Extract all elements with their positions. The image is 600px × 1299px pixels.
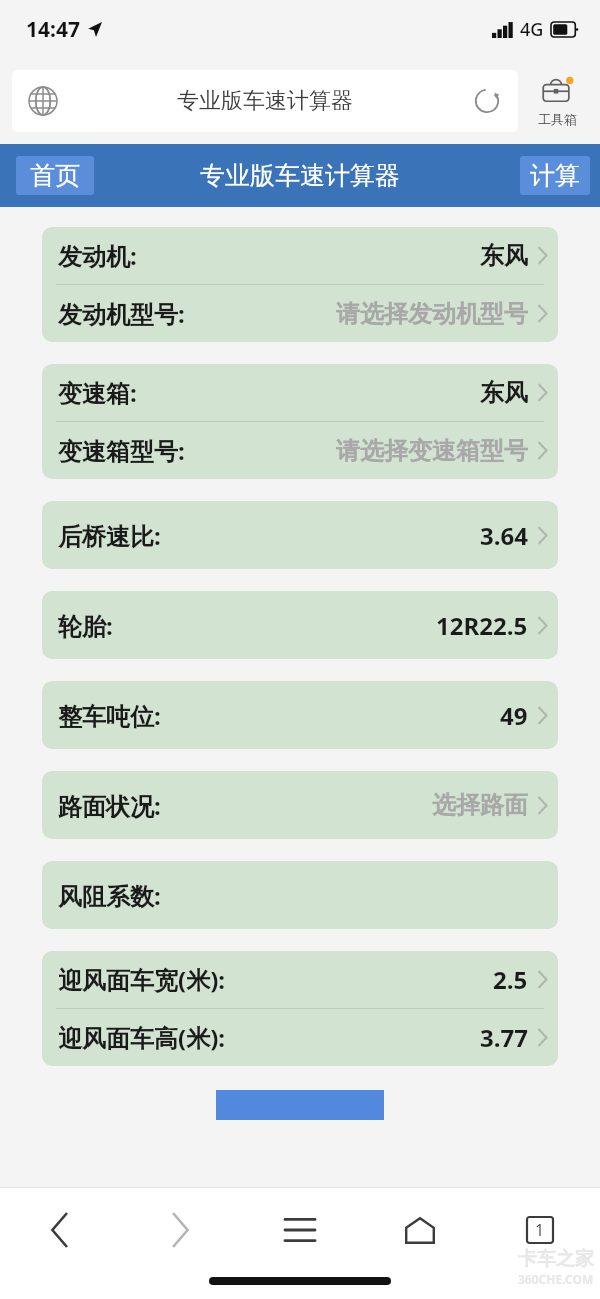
staticText: 路面状况: (58, 789, 161, 822)
button[interactable]: 风阻系数: (42, 861, 558, 929)
button[interactable]: 首页 (16, 156, 94, 195)
staticText: 选择路面 (432, 790, 528, 820)
button[interactable]: 变速箱: (42, 364, 558, 421)
button[interactable]: Forward (120, 1187, 240, 1273)
staticText: 请选择发动机型号 (336, 299, 528, 329)
staticText: 4G (520, 17, 544, 42)
staticText: 3.64 (480, 519, 528, 552)
button[interactable]: 后桥速比: (42, 501, 558, 569)
staticText: 请选择变速箱型号 (336, 436, 528, 466)
button[interactable]: Tabs (480, 1187, 600, 1273)
button[interactable]: Refresh (456, 70, 518, 132)
staticText: 12R22.5 (436, 609, 528, 642)
button[interactable]: 计算 (520, 156, 590, 195)
button[interactable]: Menu (240, 1187, 360, 1273)
staticText: 变速箱: (58, 376, 137, 409)
staticText: 计算 (530, 160, 580, 191)
staticText: 后桥速比: (58, 519, 161, 552)
staticText: 发动机: (58, 239, 137, 272)
staticText: 14:47 (26, 15, 80, 44)
button[interactable]: 发动机型号: (42, 285, 558, 342)
staticText: 东风 (480, 241, 528, 271)
staticText: 首页 (30, 160, 80, 191)
button[interactable]: 迎风面车高(米): (42, 1009, 558, 1066)
button[interactable]: 轮胎: (42, 591, 558, 659)
staticText: 360CHE.COM (518, 1271, 594, 1287)
staticText: 1 (535, 1219, 545, 1241)
button[interactable]: 路面状况: (42, 771, 558, 839)
staticText: 轮胎: (58, 609, 113, 642)
staticText: 卡车之家 (518, 1247, 594, 1271)
staticText: 风阻系数: (58, 879, 161, 912)
button[interactable]: 变速箱型号: (42, 422, 558, 479)
button[interactable]: Home (360, 1187, 480, 1273)
staticText: 专业版车速计算器 (200, 160, 400, 191)
button[interactable]: 整车吨位: (42, 681, 558, 749)
staticText: 3.77 (480, 1021, 528, 1054)
staticText: 迎风面车宽(米): (58, 963, 226, 996)
staticText: 整车吨位: (58, 699, 161, 732)
staticText: 2.5 (493, 963, 528, 996)
staticText: 东风 (480, 378, 528, 408)
button[interactable]: 迎风面车宽(米): (42, 951, 558, 1008)
staticText: 专业版车速计算器 (74, 87, 456, 115)
staticText: 工具箱 (538, 111, 577, 127)
button[interactable]: Back (0, 1187, 120, 1273)
staticText: 49 (500, 699, 528, 732)
staticText: 变速箱型号: (58, 434, 185, 467)
button[interactable]: 发动机: (42, 227, 558, 284)
button[interactable]: 专业版车速计算器 (12, 70, 518, 132)
staticText: 发动机型号: (58, 297, 185, 330)
staticText: 迎风面车高(米): (58, 1021, 226, 1054)
button[interactable]: 工具箱 (526, 75, 588, 127)
